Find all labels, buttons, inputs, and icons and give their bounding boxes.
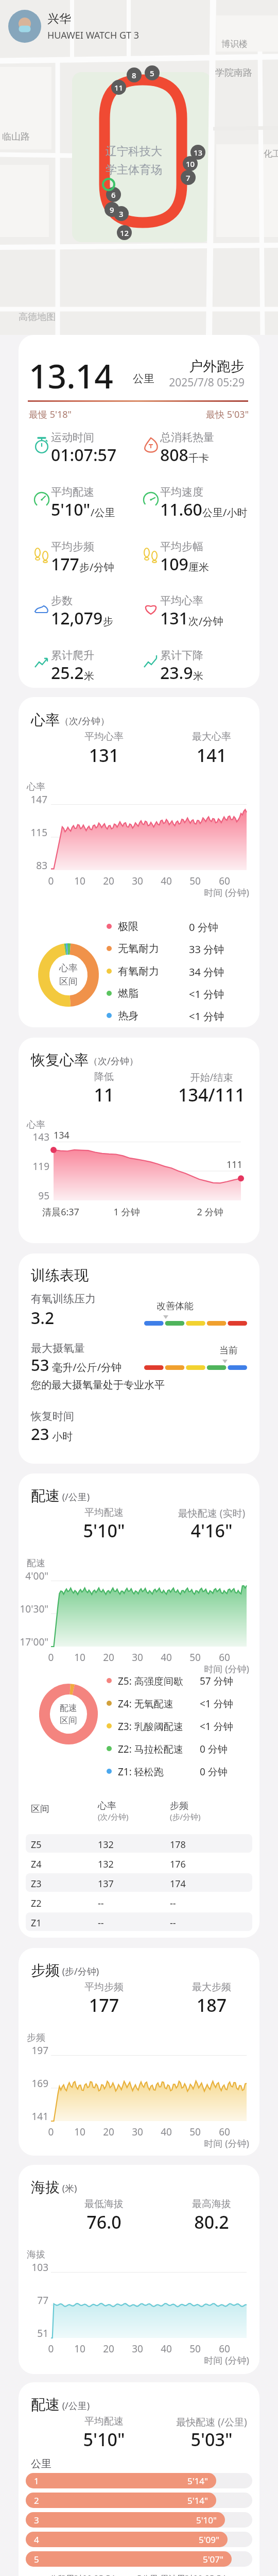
staticText: 时间 (分钟)	[188, 2354, 249, 2367]
staticText: 配速	[31, 1487, 60, 1505]
staticText: 厘米	[188, 561, 209, 574]
staticText: 01:07:57	[51, 444, 117, 466]
staticText: （次/分钟）	[60, 715, 110, 727]
staticText: 174	[170, 1877, 186, 1890]
staticText: 最低海拔	[72, 2198, 136, 2210]
staticText: 兴华	[47, 11, 71, 26]
staticText: 高德地图	[19, 311, 56, 323]
staticText: 步频	[27, 2032, 45, 2044]
staticText: 11.60	[160, 498, 202, 521]
staticText: 10	[186, 159, 195, 169]
staticText: 公里	[31, 2458, 51, 2470]
staticText: --	[170, 1917, 176, 1929]
staticText: 132	[98, 1858, 114, 1871]
staticText: 最高海拔	[180, 2198, 244, 2210]
staticText: 最快配速 (/公里)	[171, 2415, 252, 2429]
staticText: (米)	[60, 2182, 77, 2195]
staticText: 5	[34, 2553, 39, 2565]
staticText: 34 分钟	[189, 965, 224, 979]
staticText: 步频	[170, 1800, 188, 1812]
staticText: 4'00"	[19, 1569, 48, 1583]
staticText: 5'14"	[187, 2495, 208, 2506]
staticText: 13.14	[29, 353, 113, 398]
staticText: 176	[170, 1858, 186, 1871]
staticText: 心率	[31, 711, 60, 729]
staticText: 40	[154, 2342, 179, 2355]
staticText: 13	[194, 147, 203, 158]
staticText: Z2: 马拉松配速	[118, 1742, 183, 1756]
staticText: 区间	[60, 1715, 77, 1726]
staticText: 最大摄氧量	[31, 1342, 85, 1355]
staticText: 3	[119, 209, 124, 219]
staticText: 134/111	[171, 1083, 252, 1107]
staticText: 海拔	[27, 2249, 45, 2261]
staticText: 808	[160, 444, 188, 466]
staticText: 0	[39, 2125, 63, 2139]
staticText: 平均步幅	[160, 540, 203, 553]
staticText: 有氧训练压力	[31, 1292, 96, 1306]
staticText: 当前	[219, 1345, 238, 1357]
staticText: 平均心率	[160, 594, 203, 607]
staticText: Z5: 高强度间歇	[118, 1674, 183, 1688]
staticText: 147	[19, 793, 47, 806]
staticText: 83	[19, 859, 47, 872]
staticText: 40	[154, 2125, 179, 2139]
staticText: 平均步频	[51, 540, 94, 553]
staticText: 临山路	[2, 131, 30, 143]
staticText: Z4	[31, 1858, 42, 1871]
staticText: 千卡	[188, 452, 209, 465]
staticText: 5'09"	[199, 2534, 219, 2546]
staticText: 2025/7/8 05:29	[168, 375, 245, 390]
staticText: 平均配速	[51, 485, 94, 499]
staticText: 最快配速 (实时)	[171, 1506, 252, 1520]
staticText: 177	[72, 1993, 136, 2017]
staticText: 平均配速	[72, 1506, 136, 1519]
staticText: 131	[72, 743, 136, 767]
staticText: 博识楼	[221, 39, 248, 49]
staticText: 公里/小时	[202, 505, 248, 519]
staticText: 平均步频	[72, 1981, 136, 1993]
staticText: 60	[212, 2125, 237, 2139]
staticText: 11	[72, 1083, 136, 1107]
staticText: 5'03"	[180, 2428, 244, 2451]
staticText: （次/分钟）	[89, 1055, 138, 1067]
staticText: 3	[34, 2514, 39, 2526]
staticText: <1 分钟	[200, 1720, 233, 1733]
staticText: Z1: 轻松跑	[118, 1765, 164, 1778]
staticText: 0	[39, 2342, 63, 2355]
staticText: --	[170, 1897, 176, 1910]
staticText: 10	[67, 2342, 92, 2355]
staticText: 米	[84, 670, 94, 683]
staticText: 77	[19, 2294, 48, 2307]
staticText: 2 分钟	[184, 1206, 236, 1218]
staticText: (步/分钟)	[170, 1811, 201, 1822]
staticText: 197	[19, 2044, 48, 2057]
staticText: 训练表现	[31, 1266, 89, 1284]
staticText: 开始/结束	[180, 1071, 244, 1084]
staticText: 0 分钟	[200, 1765, 228, 1778]
staticText: 4'16"	[180, 1519, 244, 1543]
staticText: 33 分钟	[189, 942, 224, 956]
staticText: 141	[19, 2110, 48, 2123]
staticText: 配速	[60, 1703, 77, 1714]
staticText: Z3: 乳酸阈配速	[118, 1720, 183, 1733]
staticText: 热身	[118, 1009, 138, 1022]
staticText: 134	[54, 1129, 69, 1142]
staticText: Z2	[31, 1897, 42, 1910]
staticText: 步/分钟	[79, 560, 114, 574]
staticText: 5'10"	[72, 1519, 136, 1543]
staticText: 187	[180, 1993, 244, 2017]
staticText: 30	[125, 2125, 150, 2139]
staticText: 学主体育场	[106, 163, 162, 177]
staticText: 1	[34, 2475, 39, 2487]
staticText: --	[98, 1917, 104, 1929]
button[interactable]: Profile	[8, 8, 140, 44]
staticText: 恢复时间	[31, 1410, 74, 1423]
staticText: 米	[193, 670, 203, 683]
staticText: 平均配速	[72, 2415, 136, 2428]
staticText: 178	[170, 1838, 186, 1851]
staticText: 10	[67, 874, 92, 888]
staticText: 心率	[27, 1119, 45, 1131]
staticText: 运动时间	[51, 431, 94, 444]
staticText: 53	[31, 1354, 49, 1376]
